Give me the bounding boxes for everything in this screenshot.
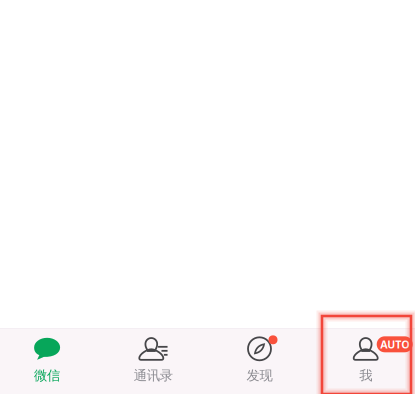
button[interactable]: 通讯录 (100, 326, 206, 394)
staticText: 发现 (246, 367, 272, 384)
button[interactable]: 发现 (206, 326, 313, 394)
staticText: 我 (359, 367, 372, 384)
staticText: AUTO (380, 337, 409, 351)
staticText: 微信 (34, 367, 60, 384)
staticText: 通讯录 (134, 367, 173, 384)
button[interactable]: 微信 (0, 326, 100, 394)
button[interactable]: AUTO (313, 326, 415, 394)
